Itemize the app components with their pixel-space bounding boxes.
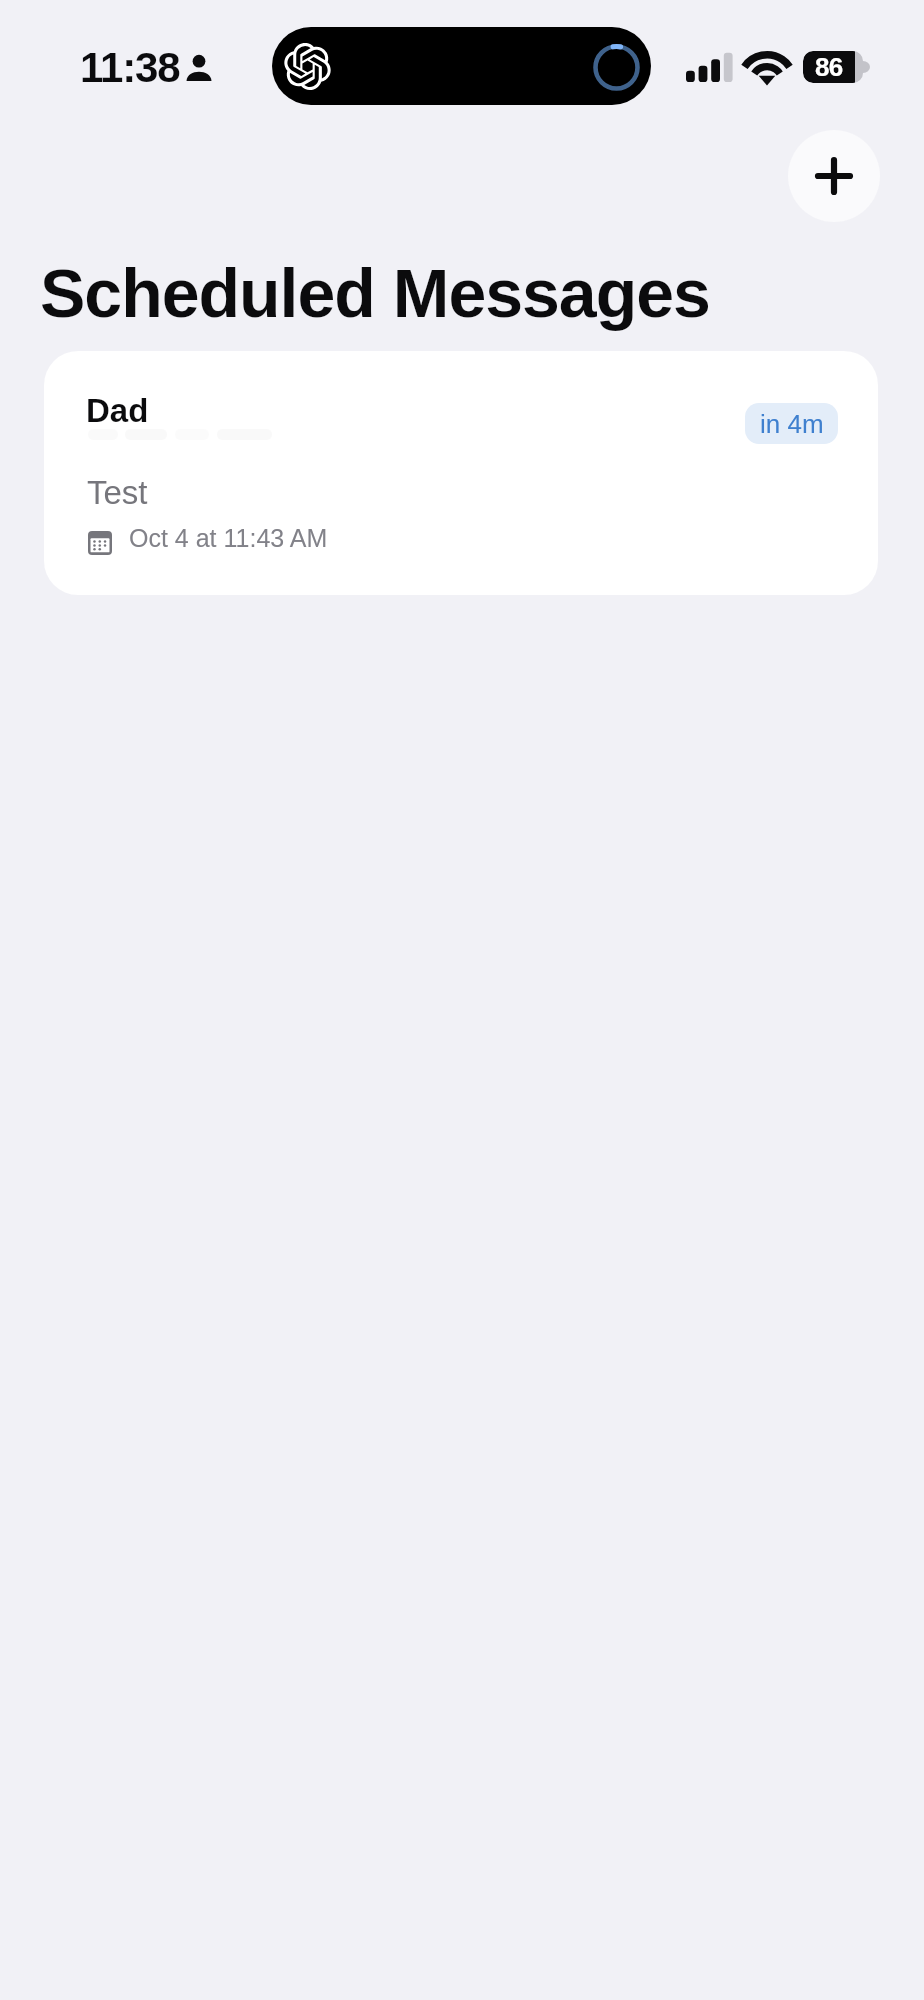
staticText: Oct 4 at 11:43 AM: [129, 524, 328, 552]
staticText: Scheduled Messages: [40, 255, 710, 331]
staticText: 11:38: [80, 44, 180, 91]
button[interactable]: New scheduled message: [788, 130, 880, 222]
staticText: 86: [815, 52, 843, 81]
button[interactable]: in 4m: [745, 403, 838, 444]
staticText: in 4m: [760, 409, 824, 438]
staticText: Test: [87, 474, 148, 511]
button[interactable]: Scheduled message to Dad: [44, 351, 878, 595]
staticText: Dad: [86, 392, 149, 429]
